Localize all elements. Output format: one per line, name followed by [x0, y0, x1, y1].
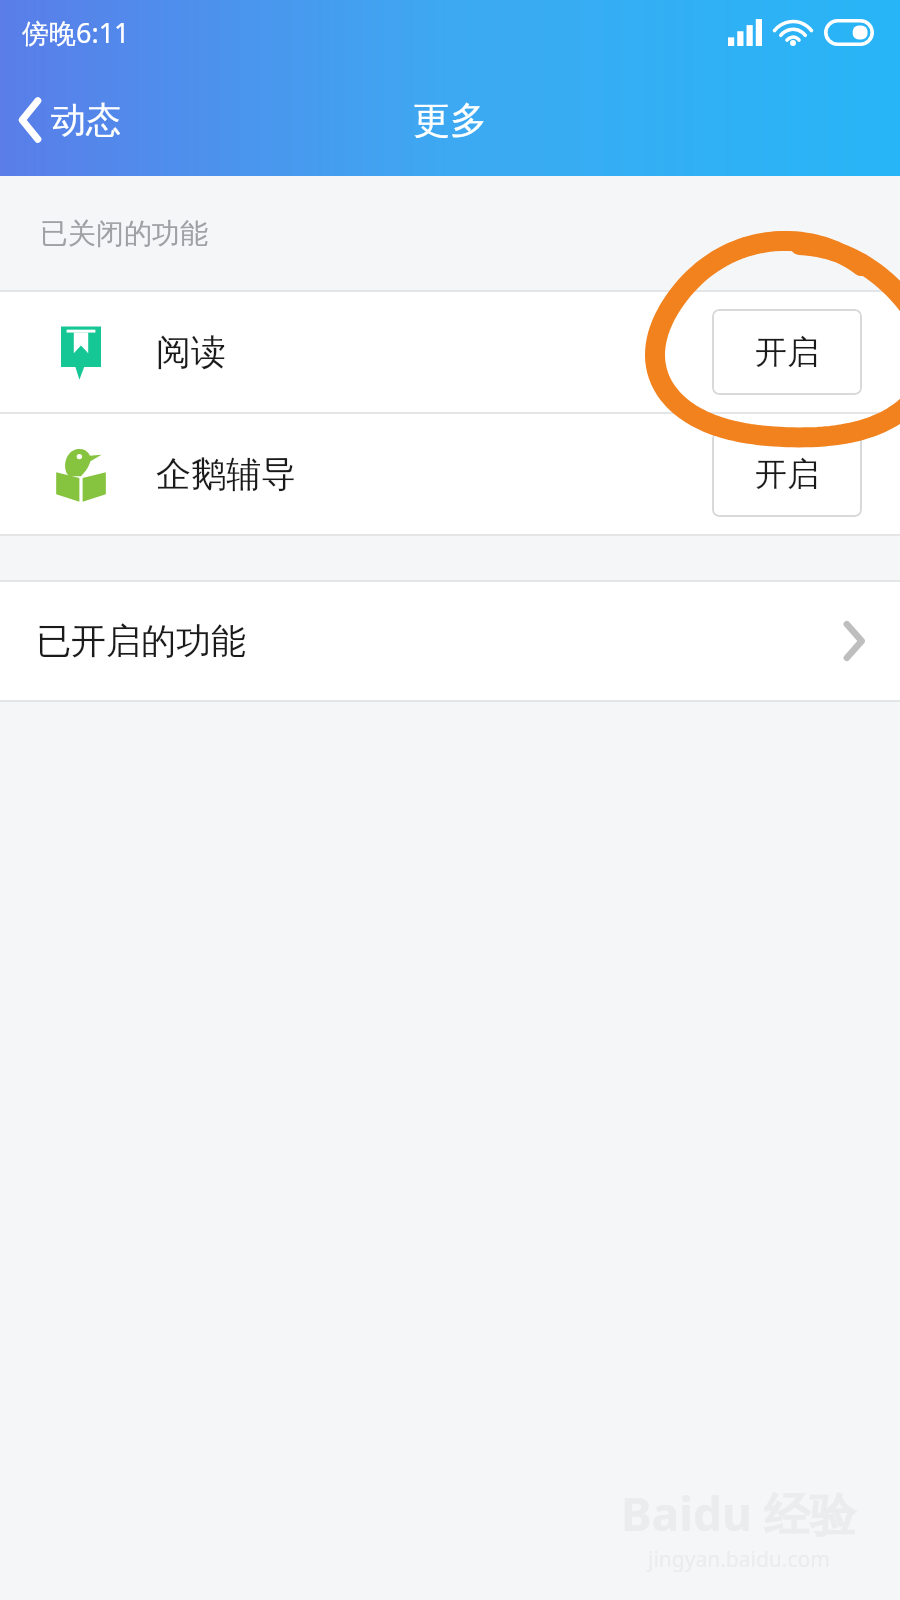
- staticText: 开启: [755, 332, 819, 372]
- other: Open enabled features: [842, 620, 866, 662]
- button[interactable]: 阅读: [0, 292, 900, 412]
- staticText: 已开启的功能: [36, 619, 246, 663]
- button[interactable]: 已开启的功能: [0, 582, 900, 700]
- staticText: 阅读: [156, 330, 226, 374]
- button[interactable]: 企鹅辅导: [0, 414, 900, 534]
- staticText: 开启: [755, 454, 819, 494]
- staticText: Baidu 经验: [621, 1482, 856, 1545]
- staticText: jingyan.baidu.com: [648, 1545, 830, 1574]
- staticText: 动态: [51, 98, 121, 142]
- button[interactable]: 开启: [712, 309, 862, 395]
- staticText: 已关闭的功能: [40, 216, 208, 251]
- button[interactable]: 开启: [712, 431, 862, 517]
- staticText: 傍晚6:11: [22, 14, 130, 51]
- staticText: 更多: [413, 97, 487, 144]
- button[interactable]: 动态: [0, 85, 139, 155]
- staticText: 企鹅辅导: [156, 452, 296, 496]
